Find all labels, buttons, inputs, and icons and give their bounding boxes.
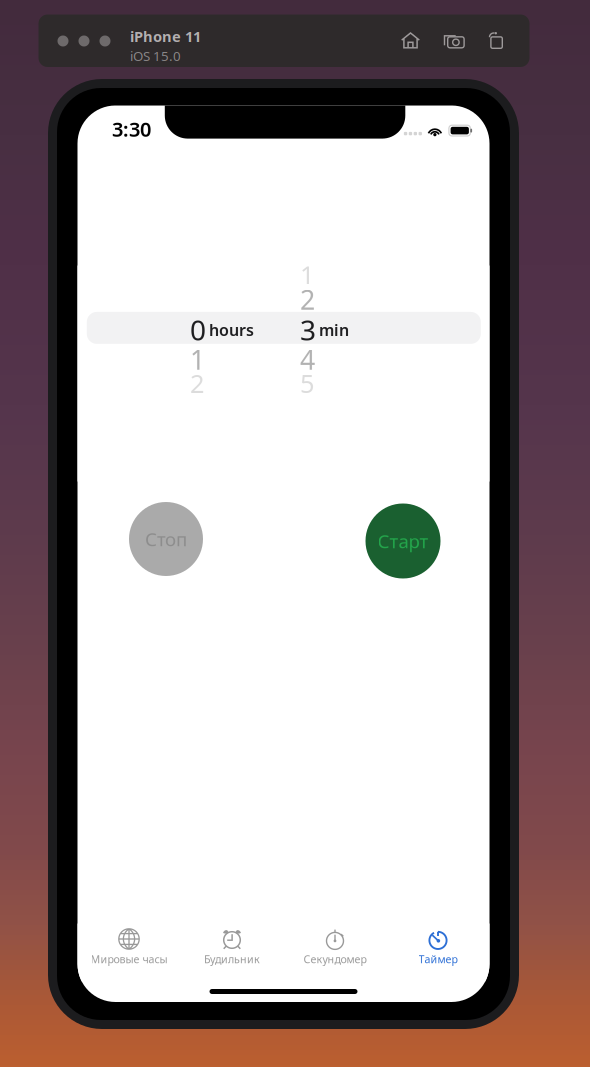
button[interactable]: Старт [365, 503, 440, 578]
staticText: 1 [190, 342, 205, 377]
staticText: 0 [190, 311, 206, 348]
button[interactable]: Секундомер [283, 927, 386, 978]
staticText: Стоп [145, 527, 187, 551]
staticText: iPhone 11 [130, 26, 201, 46]
button[interactable]: Таймер [386, 927, 489, 978]
staticText: 3 [300, 311, 316, 348]
staticText: Старт [377, 529, 428, 553]
staticText: Таймер [418, 952, 457, 966]
button[interactable]: Мировые часы [77, 927, 180, 978]
staticText: 2 [300, 282, 315, 317]
staticText: 3:30 [112, 116, 151, 142]
staticText: Будильник [204, 952, 260, 966]
button[interactable]: Rotate [485, 32, 502, 48]
staticText: iOS 15.0 [130, 47, 181, 65]
staticText: min [319, 319, 349, 340]
staticText: 5 [300, 366, 314, 400]
staticText: hours [209, 319, 254, 340]
button[interactable]: Screenshot [444, 32, 464, 48]
staticText: Секундомер [303, 952, 366, 966]
button[interactable]: Будильник [180, 927, 283, 978]
staticText: 4 [300, 342, 315, 377]
staticText: Мировые часы [90, 952, 167, 966]
staticText: 1 [300, 258, 314, 291]
staticText: 2 [190, 366, 204, 400]
button[interactable]: Стоп [129, 502, 203, 576]
button[interactable]: Home [401, 32, 420, 48]
